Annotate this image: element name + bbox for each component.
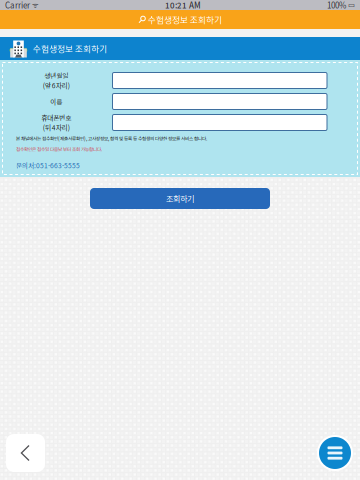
staticText: 수험생정보 조회하기 [33,42,107,55]
staticText: ᯤ [30,0,39,10]
staticText: 100% [327,0,346,11]
staticText: 이름 [50,97,62,106]
staticText: 조회하기 [166,193,194,204]
staticText: 10:21 AM [165,0,201,11]
staticText: 수험생정보 조회하기 [148,13,222,26]
staticText: ▭ [346,1,355,9]
staticText: 휴대폰번호 [41,113,71,122]
staticText: (뒤 4자리) [43,122,70,132]
button[interactable]: Back [6,434,45,472]
staticText: 문의처:051-663-5555 [16,160,80,170]
staticText: 생년월일 [44,71,68,80]
staticText: 접수확인은 접수일 다음날 부터 조회 가능합니다. [16,146,102,153]
staticText: Carrier [5,0,30,11]
button[interactable]: 조회하기 [90,188,270,209]
button[interactable]: Menu [315,433,355,473]
staticText: 본 채널에서는 접수확인(제출서류확인), 고사장정보, 합격 및 등록 등 수… [16,135,207,142]
staticText: (앞 6자리) [43,80,70,90]
